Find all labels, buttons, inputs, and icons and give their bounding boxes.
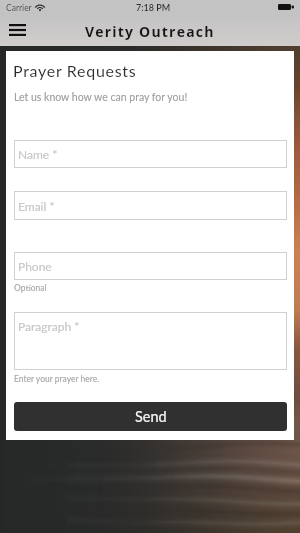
staticText: Paragraph * bbox=[18, 319, 80, 333]
button[interactable]: Email * bbox=[14, 191, 287, 220]
button[interactable]: Paragraph * bbox=[14, 312, 287, 370]
staticText: 7:18 PM bbox=[136, 2, 171, 13]
staticText: Enter your prayer here. bbox=[14, 374, 100, 384]
staticText: Let us know how we can pray for you! bbox=[14, 91, 188, 104]
button[interactable]: Phone bbox=[14, 252, 287, 280]
button[interactable]: Name * bbox=[14, 140, 287, 168]
button[interactable]: Open navigation menu bbox=[3, 18, 32, 42]
staticText: Prayer Requests bbox=[13, 61, 137, 80]
staticText: Email * bbox=[18, 199, 55, 213]
staticText: Send bbox=[135, 408, 167, 425]
button[interactable]: Send bbox=[14, 402, 287, 431]
staticText: Verity Outreach bbox=[85, 22, 215, 41]
staticText: Phone bbox=[18, 259, 52, 273]
staticText: Carrier bbox=[6, 3, 32, 13]
staticText: Name * bbox=[18, 147, 58, 161]
staticText: Optional bbox=[14, 283, 47, 293]
